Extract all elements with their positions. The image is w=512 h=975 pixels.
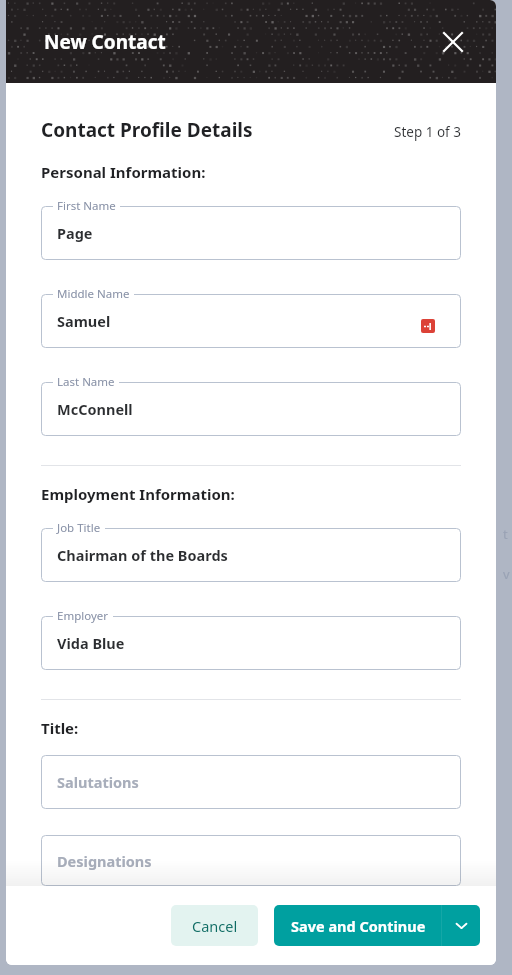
staticText: Employment Information: xyxy=(41,484,235,504)
staticText: First Name xyxy=(57,198,116,214)
button[interactable]: Close xyxy=(436,25,470,59)
staticText: Contact Profile Details xyxy=(41,117,253,143)
button[interactable]: Salutations xyxy=(41,755,461,809)
staticText: Middle Name xyxy=(57,286,130,302)
staticText: Last Name xyxy=(57,374,115,390)
staticText: New Contact xyxy=(44,29,166,55)
staticText: Cancel xyxy=(192,916,238,936)
staticText: Title: xyxy=(41,718,79,738)
button[interactable]: Employer xyxy=(41,608,461,670)
staticText: Employer xyxy=(57,608,109,624)
button[interactable]: Middle Name xyxy=(41,286,461,348)
staticText: v xyxy=(503,565,510,583)
button[interactable]: More save options xyxy=(442,905,480,946)
staticText: Personal Information: xyxy=(41,162,206,182)
button[interactable]: Job Title xyxy=(41,520,461,582)
staticText: Vida Blue xyxy=(57,633,125,653)
other: Broken image xyxy=(421,319,435,333)
staticText: Samuel xyxy=(57,311,111,331)
staticText: Save and Continue xyxy=(291,916,426,936)
button[interactable]: Cancel xyxy=(171,905,258,946)
button[interactable]: Designations xyxy=(41,835,461,886)
staticText: McConnell xyxy=(57,399,133,419)
staticText: t xyxy=(503,525,508,543)
button[interactable]: Last Name xyxy=(41,374,461,436)
button[interactable]: First Name xyxy=(41,198,461,260)
staticText: Designations xyxy=(57,851,152,871)
staticText: Chairman of the Boards xyxy=(57,545,228,565)
button[interactable]: Save and Continue xyxy=(274,905,480,946)
staticText: Job Title xyxy=(57,520,101,536)
staticText: Salutations xyxy=(57,772,139,792)
staticText: Page xyxy=(57,223,93,243)
staticText: Step 1 of 3 xyxy=(394,123,461,141)
